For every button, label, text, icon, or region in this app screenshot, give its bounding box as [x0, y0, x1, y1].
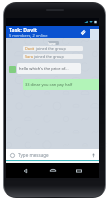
- button[interactable]: Sara: [23, 54, 83, 59]
- staticText: Task: Davit: [9, 26, 37, 33]
- button[interactable]: 33 dinar you can pay half: [23, 79, 99, 90]
- staticText: Davit: [25, 46, 35, 51]
- staticText: joined the group: [34, 54, 64, 59]
- staticText: Sara: [25, 54, 33, 59]
- button[interactable]: Home: [47, 165, 59, 177]
- staticText: hello which's the price of...: [19, 66, 69, 71]
- button[interactable]: Back: [20, 165, 32, 177]
- button[interactable]: Recent apps: [73, 165, 85, 177]
- button[interactable]: hello which's the price of...: [17, 63, 81, 74]
- button[interactable]: Record voice: [90, 152, 96, 158]
- staticText: 33 dinar you can pay half: [25, 82, 73, 87]
- button[interactable]: Emoji: [9, 152, 15, 158]
- button[interactable]: Attach: [79, 28, 87, 36]
- staticText: 5 members, 2 online: [9, 33, 48, 38]
- button[interactable]: Davit: [23, 46, 83, 51]
- staticText: June 13: [48, 41, 59, 45]
- staticText: joined the group: [36, 46, 66, 51]
- staticText: Type message: [18, 152, 49, 158]
